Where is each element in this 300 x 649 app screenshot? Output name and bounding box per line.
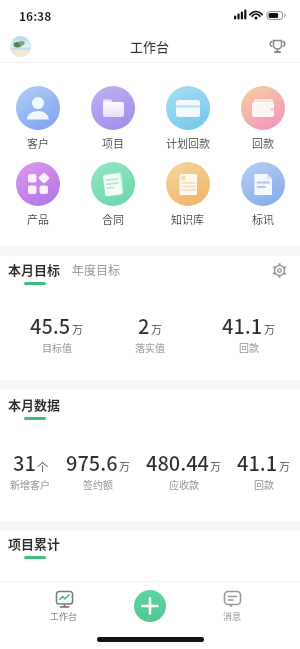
button[interactable]: 回款 [225,86,300,151]
staticText: 客户 [27,135,49,151]
staticText: 合同 [102,211,124,227]
button[interactable]: 标讯 [225,162,300,227]
button[interactable] [269,38,286,55]
button[interactable]: 计划回款 [150,86,225,151]
staticText: 41.1 [237,448,278,477]
button[interactable] [134,590,166,622]
staticText: 万 [264,321,275,337]
staticText: 知识库 [171,211,204,227]
button[interactable]: 客户 [0,86,75,151]
button[interactable]: 工作台 [40,590,88,623]
staticText: 45.5 [30,311,71,340]
staticText: 2 [138,311,150,340]
button[interactable]: 消息 [208,590,256,623]
staticText: 回款 [252,135,274,151]
staticText: 41.1 [222,311,263,340]
staticText: 工作台 [50,610,78,623]
staticText: 万 [210,458,221,474]
staticText: 回款 [239,340,259,354]
staticText: 975.6 [66,448,118,477]
button[interactable]: 知识库 [150,162,225,227]
button[interactable] [272,263,287,278]
staticText: 新增客户 [10,477,50,491]
staticText: 万 [72,321,83,337]
staticText: 计划回款 [166,135,210,151]
button[interactable]: 本月目标 [8,260,61,285]
button[interactable] [10,36,31,57]
button[interactable]: 产品 [0,162,75,227]
staticText: 万 [279,458,290,474]
staticText: 落实值 [135,340,165,354]
button[interactable]: 合同 [75,162,150,227]
staticText: 回款 [254,477,274,491]
staticText: 项目 [102,135,124,151]
staticText: 万 [151,321,162,337]
button[interactable]: 项目 [75,86,150,151]
staticText: 目标值 [42,340,72,354]
staticText: 480.44 [146,448,209,477]
staticText: 工作台 [130,37,170,56]
button[interactable]: 年度目标 [72,261,121,278]
staticText: 本月目标 [8,260,61,279]
staticText: 应收款 [169,477,199,491]
staticText: 产品 [27,211,49,227]
staticText: 标讯 [252,211,274,227]
staticText: 签约额 [83,477,113,491]
staticText: 项目累计 [8,534,61,553]
staticText: 消息 [223,610,242,623]
staticText: 本月数据 [8,395,61,414]
staticText: 16:38 [19,7,52,24]
staticText: 个 [37,458,48,474]
staticText: 31 [13,448,36,477]
staticText: 万 [119,458,130,474]
